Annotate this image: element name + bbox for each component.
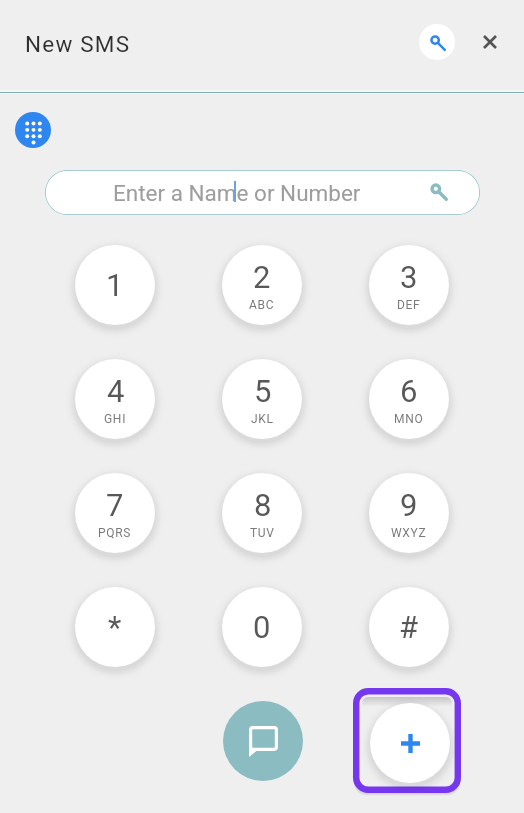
staticText: TUV bbox=[250, 526, 275, 540]
button[interactable]: Close bbox=[474, 26, 506, 58]
button[interactable]: Dialpad bbox=[15, 112, 51, 148]
staticText: PQRS bbox=[98, 526, 132, 540]
staticText: 8 bbox=[254, 487, 272, 523]
button[interactable]: * bbox=[75, 587, 155, 667]
button[interactable]: 5 bbox=[222, 359, 302, 439]
button[interactable]: 4 bbox=[75, 359, 155, 439]
staticText: DEF bbox=[397, 298, 421, 312]
staticText: # bbox=[399, 609, 419, 645]
button[interactable]: 2 bbox=[222, 245, 302, 325]
staticText: Enter a Name or Number bbox=[113, 180, 361, 206]
staticText: New SMS bbox=[25, 31, 131, 57]
button[interactable]: Add contact bbox=[353, 688, 461, 793]
staticText: 9 bbox=[400, 487, 418, 523]
staticText: 7 bbox=[106, 487, 124, 523]
button[interactable]: Search bbox=[419, 24, 455, 60]
staticText: MNO bbox=[394, 412, 424, 426]
button[interactable]: 0 bbox=[222, 587, 302, 667]
button[interactable]: 9 bbox=[369, 473, 449, 553]
staticText: 6 bbox=[400, 373, 418, 409]
staticText: 0 bbox=[253, 609, 271, 645]
button[interactable]: Enter a Name or Number bbox=[45, 170, 480, 215]
button[interactable]: 1 bbox=[75, 245, 155, 325]
staticText: 4 bbox=[107, 373, 125, 409]
button[interactable]: 6 bbox=[369, 359, 449, 439]
button[interactable]: 3 bbox=[369, 245, 449, 325]
staticText: 3 bbox=[400, 259, 418, 295]
button[interactable]: 8 bbox=[222, 473, 302, 553]
staticText: * bbox=[108, 609, 122, 645]
staticText: GHI bbox=[104, 412, 127, 426]
staticText: 5 bbox=[254, 373, 272, 409]
staticText: ABC bbox=[249, 298, 275, 312]
button[interactable]: Send message bbox=[223, 701, 303, 781]
staticText: JKL bbox=[251, 412, 274, 426]
staticText: WXYZ bbox=[391, 526, 427, 540]
staticText: 2 bbox=[253, 259, 271, 295]
button[interactable]: 7 bbox=[75, 473, 155, 553]
staticText: 1 bbox=[106, 267, 124, 303]
button[interactable]: # bbox=[369, 587, 449, 667]
